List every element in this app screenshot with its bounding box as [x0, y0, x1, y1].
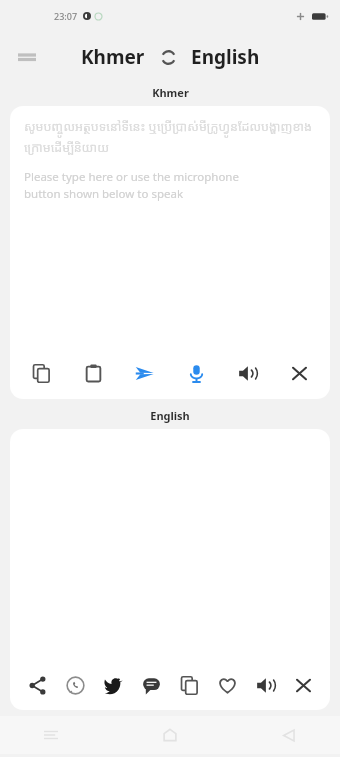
button[interactable]: Recents: [30, 716, 72, 754]
button[interactable]: សូមបញ្ចូលអត្ថបទនៅទីនេះ ឬប្រើប្រាស់មីក្រូ…: [24, 118, 316, 202]
staticText: 23:07: [54, 10, 78, 22]
button[interactable]: Clear: [282, 356, 316, 390]
button[interactable]: Share: [20, 668, 54, 702]
button[interactable]: Speak: [179, 356, 213, 390]
button[interactable]: Menu: [8, 38, 46, 76]
button[interactable]: Clear: [286, 668, 320, 702]
staticText: English: [191, 44, 260, 70]
button[interactable]: Listen: [230, 356, 264, 390]
staticText: សូមបញ្ចូលអត្ថបទនៅទីនេះ ឬប្រើប្រាស់មីក្រូ…: [24, 118, 312, 155]
button[interactable]: Translate: [127, 356, 161, 390]
staticText: Please type here or use the microphone b…: [24, 169, 239, 202]
button[interactable]: English: [191, 44, 260, 70]
button[interactable]: Copy: [172, 668, 206, 702]
button[interactable]: Copy: [24, 356, 58, 390]
button[interactable]: Home: [149, 716, 191, 754]
button[interactable]: Message: [134, 668, 168, 702]
button[interactable]: Swap languages: [155, 44, 181, 70]
button[interactable]: Listen: [248, 668, 282, 702]
button[interactable]: Twitter: [96, 668, 130, 702]
staticText: Khmer: [81, 44, 145, 70]
button[interactable]: Paste: [76, 356, 110, 390]
button[interactable]: Khmer: [81, 44, 145, 70]
button[interactable]: Favorite: [210, 668, 244, 702]
staticText: English: [150, 408, 190, 423]
staticText: Khmer: [152, 85, 189, 100]
button[interactable]: WhatsApp: [58, 668, 92, 702]
button[interactable]: Back: [268, 716, 310, 754]
